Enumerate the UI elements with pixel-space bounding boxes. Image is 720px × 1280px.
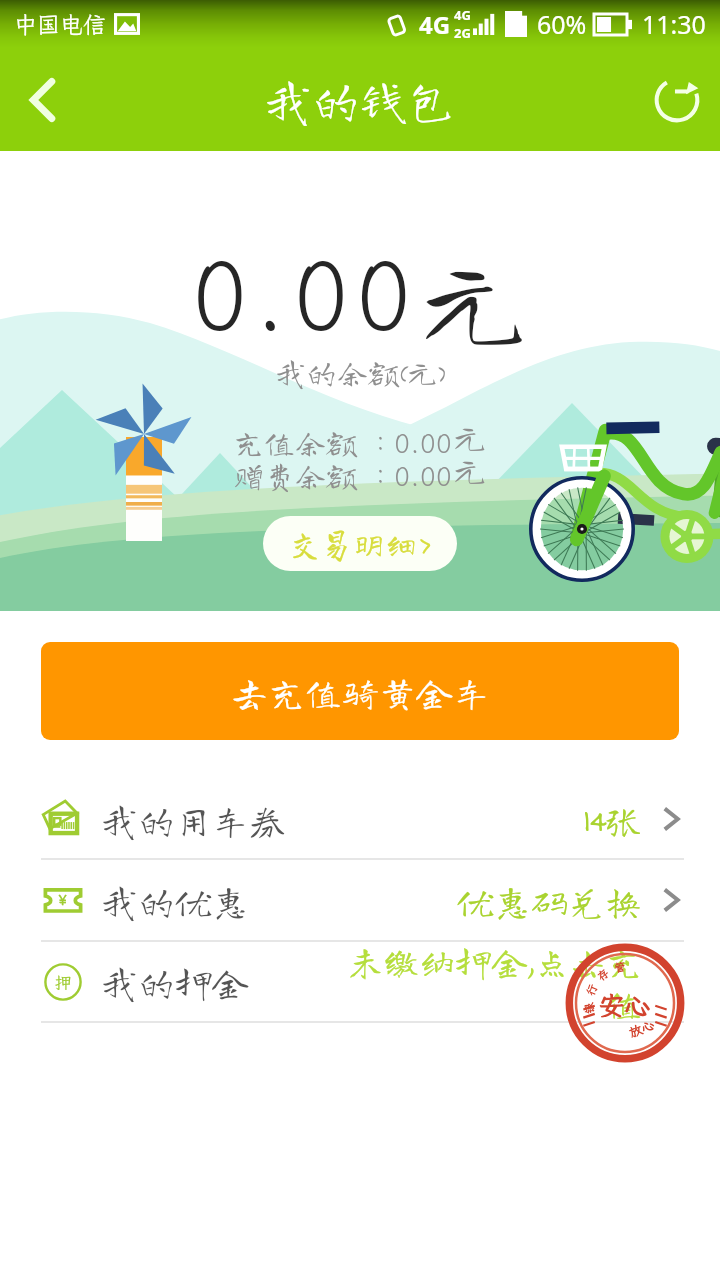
staticText: 充值余额 bbox=[233, 427, 357, 458]
staticText: 优惠码兑换 bbox=[457, 882, 642, 919]
button[interactable]: 去充值骑黄金车 bbox=[41, 642, 679, 740]
button[interactable]: 交易明细> bbox=[263, 516, 457, 571]
staticText: 我的钱包 bbox=[264, 76, 457, 124]
staticText: 元 bbox=[418, 243, 530, 355]
staticText: 0.00 bbox=[191, 231, 418, 357]
staticText: 元 bbox=[453, 420, 487, 454]
staticText: 中国电信 bbox=[14, 9, 106, 39]
staticText: 14张 bbox=[583, 801, 642, 838]
staticText: 4G bbox=[454, 6, 471, 24]
staticText: 11:30 bbox=[642, 7, 706, 41]
button[interactable]: 我的优惠 bbox=[0, 860, 720, 942]
button[interactable]: 我的押金 bbox=[0, 942, 720, 1023]
staticText: 2G bbox=[454, 24, 471, 42]
staticText: 我的用车券 bbox=[101, 801, 286, 838]
staticText: 未缴纳押金,点击充值 bbox=[322, 943, 642, 1021]
staticText: 60% bbox=[537, 7, 587, 41]
button[interactable]: 我的用车券 bbox=[0, 780, 720, 860]
staticText: 4G bbox=[419, 8, 451, 41]
staticText: ：0.00 bbox=[367, 458, 453, 494]
staticText: ：0.00 bbox=[367, 425, 453, 461]
staticText: 我的优惠 bbox=[101, 882, 249, 919]
staticText: 交易明细> bbox=[289, 528, 431, 560]
staticText: 我的余额(元) bbox=[275, 357, 446, 388]
button[interactable]: Back bbox=[0, 57, 86, 143]
staticText: 我的押金 bbox=[101, 963, 249, 1000]
staticText: 赠费余额 bbox=[233, 460, 357, 491]
staticText: 去充值骑黄金车 bbox=[231, 673, 490, 710]
staticText: 元 bbox=[453, 453, 487, 487]
button[interactable]: Refresh bbox=[634, 57, 720, 143]
